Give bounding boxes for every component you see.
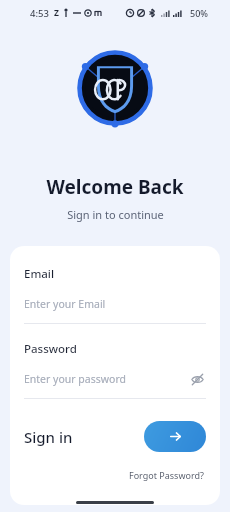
staticText: Enter your password [24, 372, 126, 386]
staticText: Forgot Password? [129, 469, 204, 481]
button[interactable]: Enter your password [24, 370, 206, 388]
staticText: Sign in [24, 427, 73, 447]
staticText: Email [24, 266, 55, 282]
staticText: 50% [190, 7, 208, 19]
staticText: 4:53 [30, 7, 49, 20]
staticText: Password [24, 341, 77, 357]
staticText: Welcome Back [46, 174, 184, 200]
button[interactable]: Toggle password visibility [188, 370, 206, 388]
button[interactable]: Forgot Password? [127, 467, 206, 483]
button[interactable]: Enter your Email [24, 295, 206, 313]
button[interactable]: Sign in [144, 421, 206, 452]
staticText: Sign in to continue [67, 207, 164, 222]
staticText: Enter your Email [24, 297, 106, 311]
staticText: Z [54, 7, 59, 19]
